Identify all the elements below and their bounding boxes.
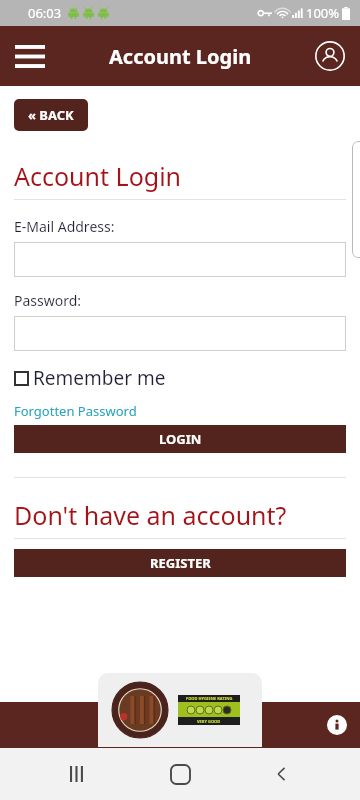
staticText: Password: [14,291,82,310]
staticText: Forgotten Password [14,402,137,420]
button[interactable]: Home [156,750,204,798]
button[interactable] [14,316,346,351]
button[interactable]: REGISTER [14,549,346,577]
button[interactable]: Information [324,712,350,738]
staticText: Remember me [33,365,166,391]
staticText: 06:03 [28,4,62,22]
button[interactable] [14,242,346,277]
button[interactable]: Forgotten Password [14,402,137,420]
button[interactable]: Remember me [14,365,166,391]
button[interactable]: Account [308,34,352,78]
button[interactable]: Menu [8,34,52,78]
staticText: FOOD HYGIENE RATING [186,696,233,701]
button[interactable]: Recents [54,750,102,798]
button[interactable]: Back [258,750,306,798]
staticText: E-Mail Address: [14,217,115,236]
staticText: Account Login [109,43,252,70]
button[interactable]: LOGIN [14,425,346,453]
staticText: « BACK [28,106,74,124]
button[interactable]: « BACK [14,99,88,131]
staticText: LOGIN [159,430,202,448]
staticText: Account Login [14,159,182,193]
staticText: 100% [306,4,340,22]
staticText: VERY GOOD [197,719,221,724]
button[interactable]: FOOD HYGIENE RATING [178,695,240,725]
staticText: Don't have an account? [14,498,287,532]
staticText: REGISTER [150,554,211,572]
